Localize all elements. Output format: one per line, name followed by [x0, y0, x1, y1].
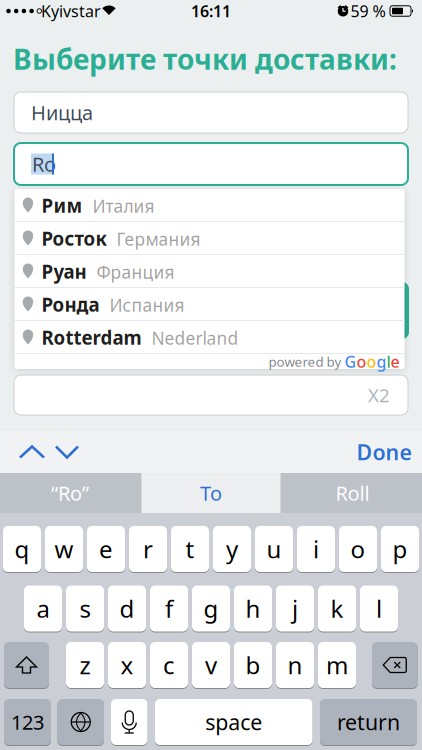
button[interactable]: p: [381, 526, 419, 572]
button[interactable]: Dictate: [111, 699, 147, 745]
button[interactable]: Delete: [372, 642, 417, 688]
button[interactable]: h: [234, 585, 272, 631]
staticText: y: [226, 533, 238, 565]
staticText: b: [245, 649, 260, 681]
button[interactable]: l: [360, 585, 398, 631]
staticText: t: [185, 533, 194, 565]
button[interactable]: return: [320, 699, 417, 745]
button[interactable]: w: [45, 526, 83, 572]
button[interactable]: z: [66, 642, 104, 688]
button[interactable]: u: [255, 526, 293, 572]
staticText: Испания: [99, 293, 184, 316]
staticText: o: [366, 351, 376, 372]
button[interactable]: m: [318, 642, 356, 688]
staticText: 123: [11, 709, 44, 735]
button[interactable]: d: [108, 585, 146, 631]
staticText: f: [165, 593, 173, 624]
staticText: p: [392, 533, 407, 565]
staticText: Ронда: [41, 292, 99, 317]
staticText: n: [287, 649, 302, 681]
button[interactable]: Росток: [14, 222, 404, 255]
staticText: Nederland: [141, 326, 238, 349]
staticText: a: [36, 593, 49, 624]
staticText: s: [79, 593, 90, 624]
button[interactable]: g: [192, 585, 230, 631]
button[interactable]: x: [108, 642, 146, 688]
staticText: w: [54, 533, 73, 565]
staticText: Росток: [41, 226, 106, 251]
staticText: u: [266, 533, 281, 565]
staticText: “Ro”: [51, 480, 89, 506]
staticText: m: [326, 649, 348, 681]
staticText: Done: [356, 438, 411, 466]
staticText: k: [330, 593, 343, 624]
staticText: v: [205, 649, 217, 681]
staticText: space: [205, 708, 262, 736]
button[interactable]: t: [171, 526, 209, 572]
staticText: r: [143, 533, 153, 565]
staticText: 16:11: [191, 0, 231, 22]
button[interactable]: v: [192, 642, 230, 688]
button[interactable]: y: [213, 526, 251, 572]
button[interactable]: Previous field: [14, 440, 50, 463]
staticText: Kyivstar: [41, 0, 101, 22]
button[interactable]: e: [87, 526, 125, 572]
button[interactable]: Ницца: [14, 92, 408, 133]
staticText: l: [376, 593, 382, 624]
button[interactable]: Roll: [283, 473, 422, 513]
staticText: i: [313, 533, 319, 565]
button[interactable]: Рассчитать: [15, 282, 409, 339]
staticText: return: [337, 708, 400, 736]
button[interactable]: 123: [4, 699, 51, 745]
button[interactable]: Done: [352, 434, 415, 470]
staticText: o: [356, 351, 366, 372]
button[interactable]: Next keyboard: [57, 699, 104, 745]
staticText: z: [79, 649, 90, 681]
button[interactable]: c: [150, 642, 188, 688]
staticText: x: [120, 649, 133, 681]
button[interactable]: q: [3, 526, 41, 572]
staticText: Руан: [41, 259, 86, 284]
button[interactable]: To: [141, 473, 280, 513]
staticText: g: [376, 351, 386, 372]
button[interactable]: n: [276, 642, 314, 688]
staticText: X2: [368, 383, 390, 407]
staticText: G: [344, 351, 356, 372]
staticText: h: [245, 593, 260, 624]
button[interactable]: Shift: [4, 642, 49, 688]
staticText: Roll: [335, 480, 369, 506]
button[interactable]: k: [318, 585, 356, 631]
button[interactable]: Ro: [14, 143, 408, 185]
button[interactable]: Rotterdam: [14, 321, 404, 354]
staticText: l: [386, 351, 390, 372]
button[interactable]: “Ro”: [0, 473, 140, 513]
staticText: q: [14, 533, 29, 565]
button[interactable]: i: [297, 526, 335, 572]
staticText: Франция: [86, 260, 174, 283]
button[interactable]: X2: [14, 375, 408, 415]
button[interactable]: a: [24, 585, 62, 631]
staticText: g: [203, 593, 218, 624]
button[interactable]: o: [339, 526, 377, 572]
staticText: To: [200, 480, 222, 506]
staticText: o: [350, 533, 365, 565]
staticText: e: [99, 533, 113, 565]
button[interactable]: j: [276, 585, 314, 631]
staticText: j: [292, 593, 298, 624]
button[interactable]: r: [129, 526, 167, 572]
staticText: Выберите точки доставки:: [13, 40, 397, 78]
button[interactable]: Рим: [14, 189, 404, 222]
button[interactable]: Next field: [50, 440, 84, 463]
staticText: Италия: [82, 194, 154, 217]
staticText: e: [390, 351, 399, 372]
staticText: powered by: [268, 353, 344, 370]
button[interactable]: s: [66, 585, 104, 631]
button[interactable]: Ронда: [14, 288, 404, 321]
staticText: c: [163, 649, 175, 681]
button[interactable]: Руан: [14, 255, 404, 288]
staticText: Ницца: [31, 99, 93, 126]
button[interactable]: b: [234, 642, 272, 688]
button[interactable]: f: [150, 585, 188, 631]
button[interactable]: space: [155, 699, 312, 745]
staticText: d: [119, 593, 134, 624]
